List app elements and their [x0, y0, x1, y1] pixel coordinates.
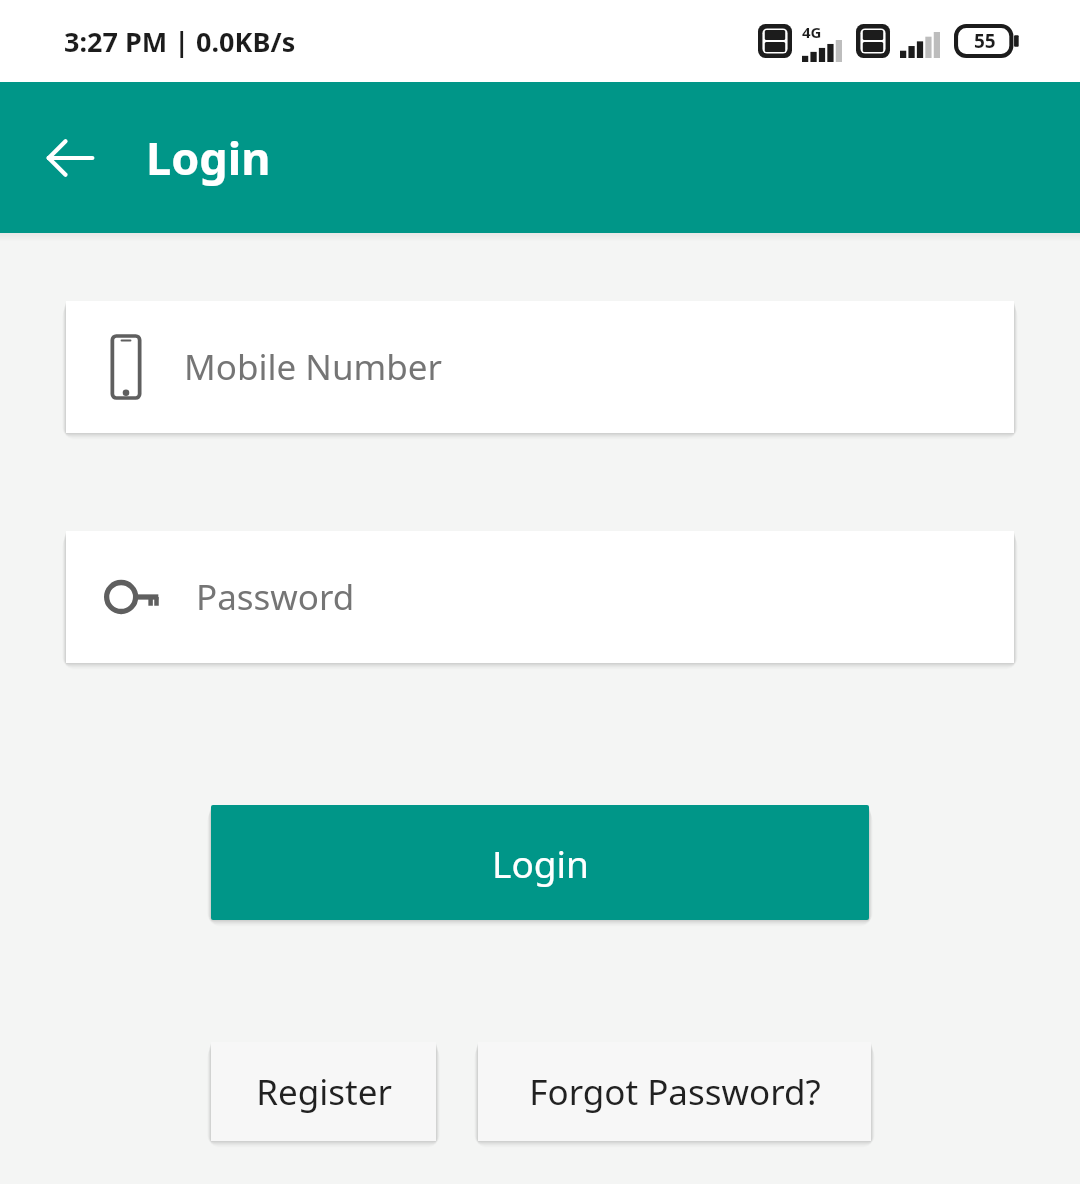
staticText: 55	[974, 28, 996, 54]
button[interactable]: Password	[66, 531, 1014, 663]
staticText: Mobile Number	[184, 343, 443, 391]
staticText: Login	[146, 127, 271, 188]
staticText: Login	[492, 838, 589, 888]
staticText: Forgot Password?	[529, 1068, 821, 1116]
staticText: Register	[256, 1068, 392, 1116]
button[interactable]: Forgot Password?	[478, 1042, 871, 1141]
button[interactable]: Login	[211, 805, 869, 920]
staticText: 4G	[802, 22, 822, 42]
staticText: Password	[196, 573, 355, 621]
staticText: 3:27 PM | 0.0KB/s	[64, 23, 296, 60]
button[interactable]: Mobile Number	[66, 301, 1014, 433]
button[interactable]: Register	[211, 1042, 436, 1141]
button[interactable]: Back	[36, 124, 104, 192]
